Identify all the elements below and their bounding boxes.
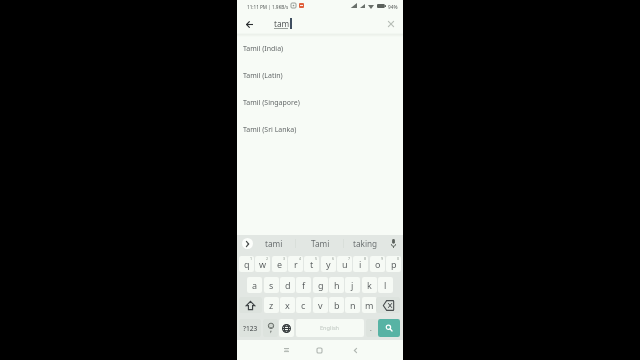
- button[interactable]: g: [313, 277, 328, 293]
- button[interactable]: Voice input: [386, 236, 401, 251]
- button[interactable]: Back: [239, 12, 259, 36]
- staticText: 6: [332, 256, 335, 261]
- button[interactable]: l: [378, 277, 393, 293]
- button[interactable]: Tamil (Singapore): [237, 89, 403, 116]
- button[interactable]: Search field: [237, 12, 403, 36]
- staticText: f: [302, 279, 306, 291]
- staticText: y: [326, 258, 331, 270]
- button[interactable]: Clear search: [381, 12, 403, 36]
- staticText: ?123: [243, 324, 258, 333]
- staticText: o: [375, 258, 381, 270]
- button[interactable]: taking: [342, 236, 388, 251]
- staticText: tami: [265, 238, 283, 249]
- staticText: b: [334, 299, 340, 311]
- staticText: z: [269, 299, 274, 311]
- staticText: l: [384, 279, 387, 291]
- button[interactable]: k: [362, 277, 377, 293]
- button[interactable]: u: [337, 256, 352, 272]
- button[interactable]: j: [345, 277, 360, 293]
- button[interactable]: o: [370, 256, 385, 272]
- staticText: c: [301, 299, 306, 311]
- button[interactable]: z: [264, 297, 279, 313]
- button[interactable]: Search: [378, 319, 400, 337]
- button[interactable]: Change keyboard language: [279, 319, 294, 337]
- staticText: 3: [283, 256, 286, 261]
- staticText: e: [277, 258, 283, 270]
- staticText: q: [244, 258, 250, 270]
- button[interactable]: Tami: [297, 236, 343, 251]
- staticText: 94%: [388, 4, 398, 11]
- staticText: w: [259, 258, 267, 270]
- button[interactable]: q: [239, 256, 254, 272]
- staticText: Tami: [311, 238, 330, 249]
- staticText: 1: [250, 256, 253, 261]
- staticText: n: [350, 299, 356, 311]
- button[interactable]: y: [321, 256, 336, 272]
- button[interactable]: w: [255, 256, 270, 272]
- button[interactable]: tami: [251, 236, 297, 251]
- staticText: r: [294, 258, 298, 270]
- button[interactable]: t: [304, 256, 319, 272]
- button[interactable]: c: [296, 297, 311, 313]
- staticText: Tamil (Latin): [243, 71, 283, 81]
- staticText: t: [310, 258, 314, 270]
- staticText: d: [285, 279, 291, 291]
- button[interactable]: Backspace: [376, 297, 400, 313]
- button[interactable]: v: [313, 297, 328, 313]
- staticText: Tamil (Sri Lanka): [243, 125, 297, 135]
- staticText: u: [342, 258, 348, 270]
- staticText: g: [318, 279, 324, 291]
- staticText: 2: [266, 256, 269, 261]
- button[interactable]: Tamil (Sri Lanka): [237, 116, 403, 143]
- button[interactable]: s: [264, 277, 279, 293]
- button[interactable]: m: [362, 297, 377, 313]
- staticText: x: [285, 299, 290, 311]
- staticText: Tamil (India): [243, 44, 284, 54]
- staticText: 7: [348, 256, 351, 261]
- button[interactable]: f: [296, 277, 311, 293]
- button[interactable]: Emoji: [263, 319, 278, 337]
- button[interactable]: d: [280, 277, 295, 293]
- button[interactable]: r: [288, 256, 303, 272]
- staticText: 0: [397, 256, 400, 261]
- button[interactable]: Tamil (India): [237, 35, 403, 62]
- staticText: v: [318, 299, 323, 311]
- staticText: 11:11 PM | 1.9KB/s: [247, 4, 289, 10]
- staticText: i: [359, 258, 362, 270]
- staticText: k: [367, 279, 372, 291]
- staticText: a: [252, 279, 258, 291]
- button[interactable]: a: [247, 277, 262, 293]
- button[interactable]: Home: [309, 341, 329, 359]
- button[interactable]: Recent apps: [276, 341, 296, 359]
- button[interactable]: e: [272, 256, 287, 272]
- staticText: 4: [299, 256, 302, 261]
- button[interactable]: Tamil (Latin): [237, 62, 403, 89]
- staticText: p: [391, 258, 397, 270]
- button[interactable]: English: [296, 319, 364, 337]
- staticText: h: [334, 279, 340, 291]
- button[interactable]: Back: [345, 341, 365, 359]
- button[interactable]: ?123: [239, 319, 261, 337]
- button[interactable]: i: [353, 256, 368, 272]
- staticText: 9: [381, 256, 384, 261]
- staticText: English: [320, 324, 340, 332]
- staticText: taking: [353, 238, 378, 249]
- staticText: s: [269, 279, 274, 291]
- button[interactable]: p: [386, 256, 401, 272]
- button[interactable]: Shift: [239, 297, 262, 313]
- staticText: j: [351, 279, 354, 291]
- staticText: tami: [274, 18, 292, 29]
- staticText: 5: [315, 256, 318, 261]
- button[interactable]: n: [345, 297, 360, 313]
- button[interactable]: h: [329, 277, 344, 293]
- staticText: .: [370, 324, 372, 333]
- button[interactable]: .: [366, 319, 378, 337]
- button[interactable]: More suggestions: [242, 238, 253, 249]
- staticText: Tamil (Singapore): [243, 98, 300, 108]
- button[interactable]: b: [329, 297, 344, 313]
- staticText: m: [365, 299, 374, 311]
- button[interactable]: x: [280, 297, 295, 313]
- staticText: 8: [364, 256, 367, 261]
